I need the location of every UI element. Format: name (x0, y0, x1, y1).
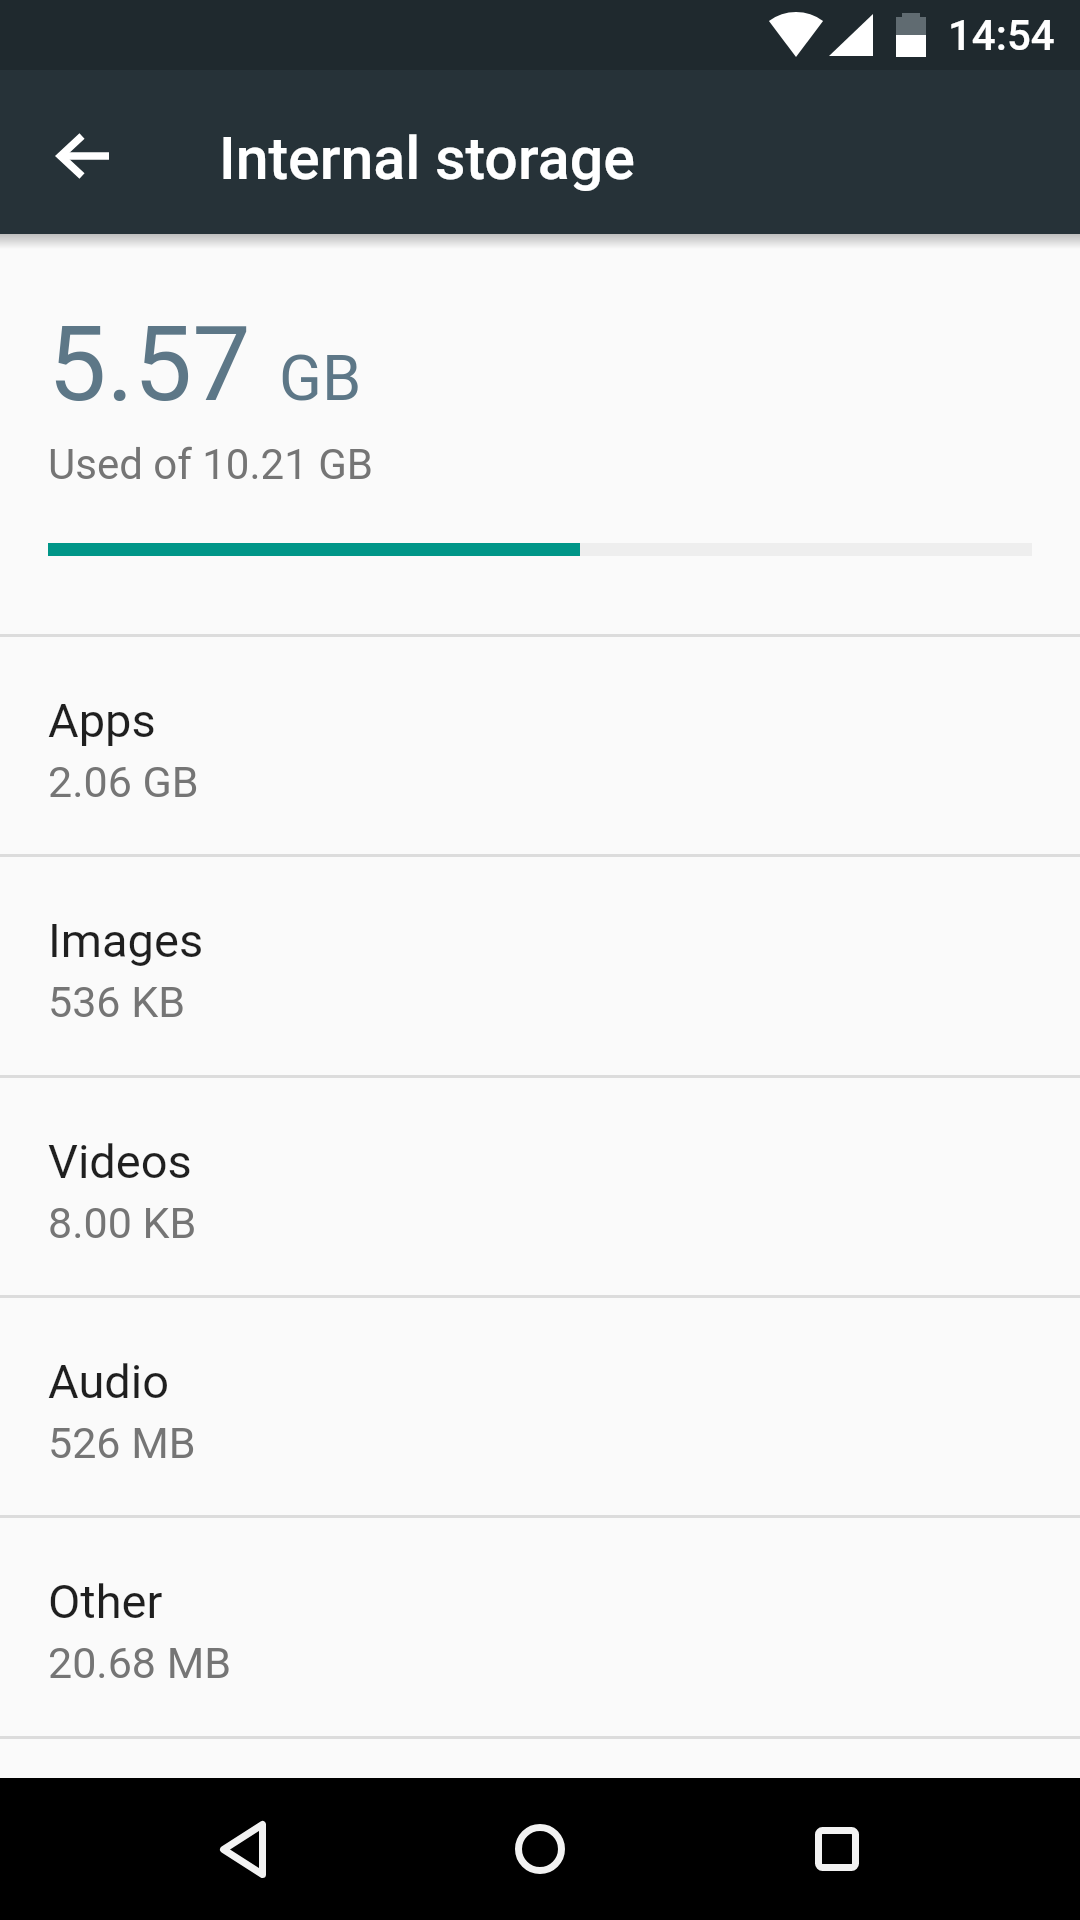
staticText: Apps (48, 693, 156, 748)
staticText: GB (279, 342, 362, 416)
button[interactable]: Other (0, 1518, 1080, 1739)
staticText: 2.06 GB (48, 757, 199, 807)
staticText: Internal storage (219, 124, 635, 193)
staticText: 526 MB (48, 1418, 196, 1468)
staticText: Videos (48, 1134, 192, 1189)
button[interactable] (169, 1778, 317, 1920)
staticText: 536 KB (48, 977, 185, 1027)
button[interactable]: Videos (0, 1078, 1080, 1298)
button[interactable] (42, 110, 126, 194)
button[interactable] (466, 1778, 614, 1920)
staticText: 14:54 (948, 11, 1055, 60)
button[interactable] (763, 1778, 911, 1920)
button[interactable]: Apps (0, 637, 1080, 857)
staticText: Audio (48, 1354, 170, 1409)
staticText: 8.00 KB (48, 1198, 197, 1248)
button[interactable]: Audio (0, 1298, 1080, 1518)
staticText: 20.68 MB (48, 1638, 232, 1688)
button[interactable]: Images (0, 857, 1080, 1078)
staticText: Images (48, 913, 204, 968)
staticText: 5.57 (48, 304, 251, 426)
staticText: Other (48, 1574, 163, 1629)
staticText: Used of 10.21 GB (48, 440, 373, 489)
